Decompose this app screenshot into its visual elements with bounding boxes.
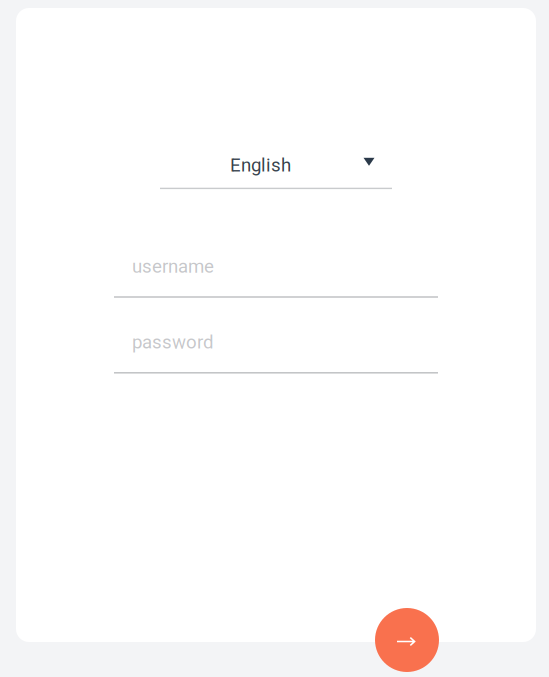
- staticText: password: [132, 331, 214, 353]
- staticText: username: [132, 255, 214, 277]
- button[interactable]: password: [114, 328, 438, 374]
- button[interactable]: username: [114, 253, 438, 299]
- button[interactable]: Continue: [375, 608, 439, 672]
- staticText: English: [230, 154, 291, 176]
- button[interactable]: English: [160, 150, 392, 192]
